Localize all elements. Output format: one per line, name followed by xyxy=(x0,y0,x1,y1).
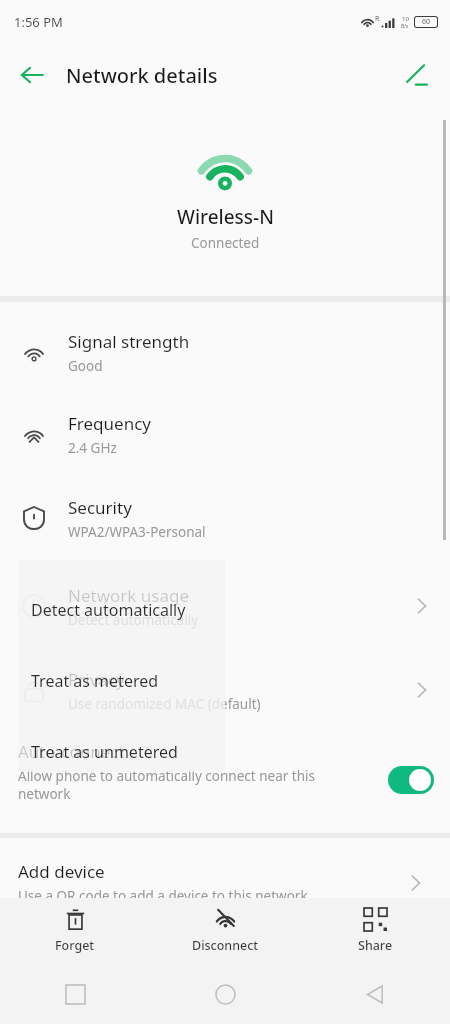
staticText: Add device xyxy=(18,860,105,883)
staticText: Signal strength xyxy=(68,330,190,353)
button[interactable]: Privacy xyxy=(0,650,450,730)
staticText: R xyxy=(375,14,380,24)
staticText: 60 xyxy=(422,17,431,27)
staticText: Use randomized MAC (default) xyxy=(68,695,261,713)
staticText: Auto-connect xyxy=(18,740,125,763)
staticText: Treat as metered xyxy=(31,670,159,692)
button[interactable]: Back xyxy=(300,964,450,1024)
button[interactable]: Detect automatically xyxy=(18,588,225,632)
button[interactable]: Recents xyxy=(0,964,150,1024)
staticText: Use a QR code to add a device to this ne… xyxy=(18,887,308,905)
staticText: 1:56 PM xyxy=(14,13,63,31)
staticText: Detect automatically xyxy=(68,611,199,629)
staticText: Allow phone to automatically connect nea… xyxy=(18,767,368,803)
staticText: 2.4 GHz xyxy=(68,439,117,457)
staticText: Privacy xyxy=(68,668,125,691)
button[interactable]: Disconnect xyxy=(150,898,300,964)
button[interactable]: Frequency xyxy=(0,394,450,474)
button[interactable]: Forget xyxy=(0,898,150,964)
button[interactable]: Edit xyxy=(394,52,440,98)
staticText: Wireless-N xyxy=(177,204,274,230)
staticText: Good xyxy=(68,357,103,375)
staticText: Frequency xyxy=(68,412,151,435)
staticText: WPA2/WPA3-Personal xyxy=(68,523,206,541)
staticText: B/s xyxy=(401,23,409,30)
staticText: Network details xyxy=(66,62,218,89)
button[interactable]: Signal strength xyxy=(0,312,450,392)
staticText: Detect automatically xyxy=(31,599,186,621)
staticText: Disconnect xyxy=(192,937,259,954)
staticText: Security xyxy=(68,496,132,519)
staticText: Treat as unmetered xyxy=(31,741,178,763)
button[interactable]: Auto-connect toggle xyxy=(388,766,434,794)
button[interactable]: Home xyxy=(150,964,300,1024)
button[interactable]: Treat as unmetered xyxy=(18,730,225,774)
button[interactable]: Network usage xyxy=(0,566,450,646)
button[interactable]: Share xyxy=(300,898,450,964)
staticText: Network usage xyxy=(68,584,190,607)
button[interactable]: Treat as metered xyxy=(18,659,225,703)
button[interactable]: Back xyxy=(8,51,56,99)
button[interactable]: Security xyxy=(0,478,450,558)
staticText: Forget xyxy=(55,937,95,954)
staticText: 10 xyxy=(402,15,409,23)
staticText: Share xyxy=(358,937,393,954)
staticText: Connected xyxy=(191,234,260,252)
